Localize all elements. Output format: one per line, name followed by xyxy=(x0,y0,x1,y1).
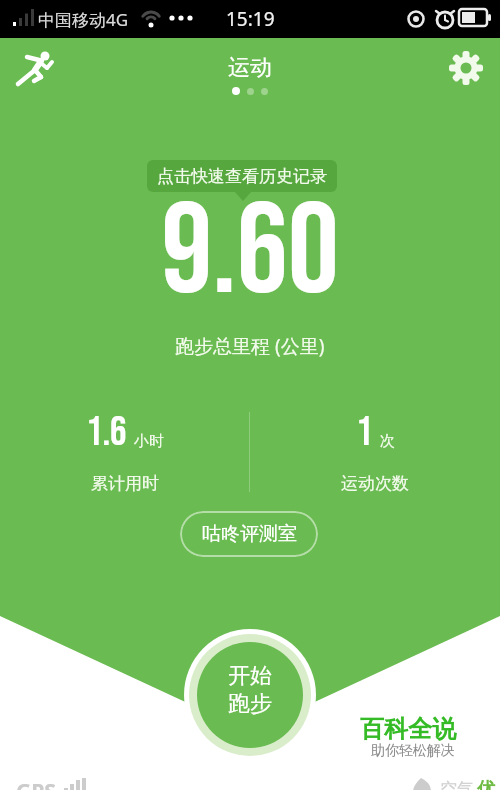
staticText: 咕咚评测室 xyxy=(202,522,297,546)
button[interactable]: 点击快速查看历史记录 xyxy=(147,160,337,192)
staticText: 次 xyxy=(380,432,395,451)
staticText: 开始 xyxy=(228,662,272,690)
staticText: 1.6 xyxy=(86,408,127,457)
button[interactable]: 开始 xyxy=(184,629,316,761)
staticText: 小时 xyxy=(134,432,164,451)
staticText: 优 xyxy=(477,778,495,790)
button[interactable] xyxy=(14,48,56,90)
staticText: 跑步 xyxy=(228,690,272,718)
staticText: 运动 xyxy=(228,54,272,82)
staticText: GPS xyxy=(16,777,56,790)
button[interactable]: 百科全说 xyxy=(360,714,456,744)
staticText: 运动次数 xyxy=(341,473,409,494)
staticText: 百科全说 xyxy=(360,714,456,744)
staticText: 空气 xyxy=(440,779,474,790)
button[interactable]: 咕咚评测室 xyxy=(180,511,318,557)
staticText: 9.60 xyxy=(0,177,500,331)
staticText: 中国移动4G xyxy=(38,8,129,31)
staticText: 助你轻松解决 xyxy=(371,742,455,760)
staticText: 点击快速查看历史记录 xyxy=(157,166,327,187)
staticText: 15:19 xyxy=(226,6,275,32)
staticText: 累计用时 xyxy=(91,473,159,494)
button[interactable] xyxy=(448,50,484,86)
staticText: 跑步总里程 (公里) xyxy=(175,333,325,359)
staticText: 1 xyxy=(356,408,373,457)
